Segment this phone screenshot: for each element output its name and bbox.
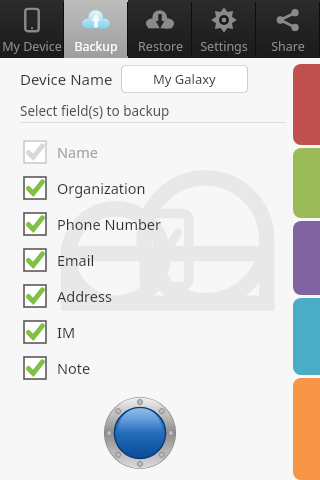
staticText: Address	[57, 286, 112, 306]
button[interactable]: Backup	[104, 397, 176, 469]
staticText: My Device	[2, 38, 62, 55]
staticText: Name	[57, 142, 98, 162]
staticText: IM	[57, 322, 76, 342]
button[interactable]: Note	[0, 350, 320, 386]
staticText: Backup	[74, 38, 118, 55]
staticText: Note	[57, 358, 91, 378]
button[interactable]: Category tab	[293, 378, 320, 480]
staticText: Device Name	[20, 69, 113, 89]
button[interactable]: My Device	[0, 0, 64, 58]
button[interactable]: Backup	[64, 0, 128, 58]
button[interactable]: Settings	[192, 0, 256, 58]
button[interactable]: IM	[0, 314, 320, 350]
button[interactable]: Phone Number	[0, 206, 320, 242]
staticText: Organization	[57, 178, 146, 198]
button[interactable]: Category tab	[293, 298, 320, 375]
staticText: Email	[57, 250, 95, 270]
button[interactable]: Email	[0, 242, 320, 278]
staticText: Settings	[200, 38, 248, 55]
button[interactable]: Restore	[128, 0, 192, 58]
button[interactable]: Address	[0, 278, 320, 314]
button[interactable]: Category tab	[293, 64, 320, 145]
button[interactable]: Category tab	[293, 148, 320, 218]
button[interactable]: Name	[0, 134, 320, 170]
staticText: Phone Number	[57, 214, 162, 234]
staticText: Select field(s) to backup	[20, 102, 170, 120]
button[interactable]: Organization	[0, 170, 320, 206]
staticText: Share	[271, 38, 305, 55]
button[interactable]: Category tab	[293, 221, 320, 295]
staticText: My Galaxy	[153, 70, 216, 88]
button[interactable]: Share	[256, 0, 320, 58]
button[interactable]: My Galaxy	[121, 65, 248, 93]
staticText: Restore	[138, 38, 183, 55]
